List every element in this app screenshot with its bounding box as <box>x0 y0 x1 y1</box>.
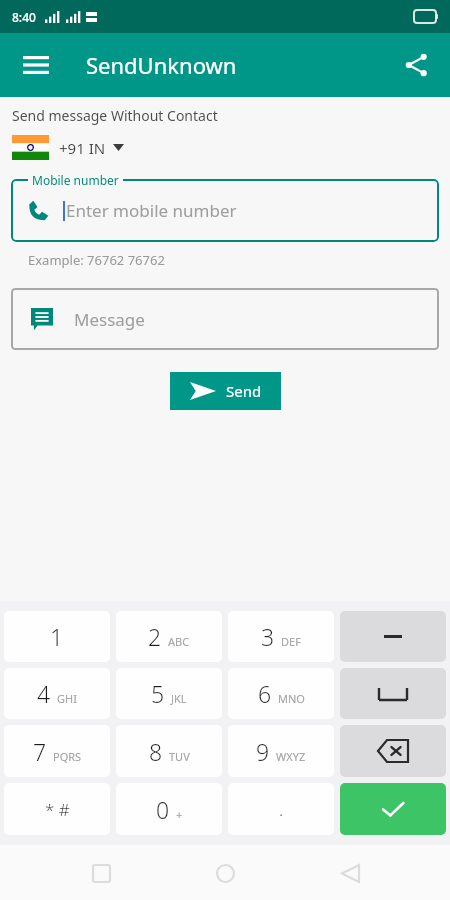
button[interactable]: 7 <box>4 725 110 777</box>
button[interactable]: Open navigation menu <box>14 43 58 87</box>
button[interactable]: +91 IN <box>12 135 124 160</box>
staticText: 0 <box>156 794 170 825</box>
staticText: 4 <box>37 678 51 709</box>
button[interactable]: Enter mobile number <box>11 179 439 242</box>
staticText: * # <box>45 798 70 821</box>
staticText: 8:40 <box>12 9 36 25</box>
staticText: 1 <box>50 621 64 652</box>
staticText: DEF <box>281 634 301 649</box>
staticText: +91 IN <box>59 138 106 158</box>
staticText: Mobile number <box>32 172 119 188</box>
button[interactable]: 2 <box>116 611 222 662</box>
button[interactable]: Send <box>170 372 281 410</box>
button[interactable]: 6 <box>228 668 334 719</box>
staticText: Send message Without Contact <box>12 106 218 125</box>
button[interactable]: Enter <box>340 783 446 835</box>
staticText: + <box>176 807 183 822</box>
staticText: Enter mobile number <box>66 199 237 222</box>
button[interactable]: Home <box>201 849 249 897</box>
button[interactable]: * # <box>4 783 110 835</box>
button[interactable]: 8 <box>116 725 222 777</box>
staticText: Send <box>226 381 262 401</box>
button[interactable]: 0 <box>116 783 222 835</box>
staticText: 8 <box>149 736 163 767</box>
staticText: Message <box>74 308 145 331</box>
button[interactable]: Space <box>340 668 446 719</box>
button[interactable]: Message <box>11 288 439 350</box>
staticText: TUV <box>169 749 190 764</box>
staticText: 2 <box>148 621 162 652</box>
button[interactable]: 3 <box>228 611 334 662</box>
staticText: 3 <box>261 621 275 652</box>
staticText: 7 <box>33 736 47 767</box>
staticText: GHI <box>57 691 77 706</box>
staticText: JKL <box>171 691 187 706</box>
button[interactable]: Back <box>326 849 374 897</box>
button[interactable]: 9 <box>228 725 334 777</box>
staticText: WXYZ <box>276 749 306 764</box>
staticText: MNO <box>278 691 305 706</box>
staticText: Example: 76762 76762 <box>28 251 165 269</box>
staticText: 6 <box>258 678 272 709</box>
button[interactable]: 4 <box>4 668 110 719</box>
staticText: SendUnknown <box>86 50 237 80</box>
staticText: . <box>279 798 284 821</box>
button[interactable]: 1 <box>4 611 110 662</box>
button[interactable]: Share <box>394 43 438 87</box>
button[interactable]: Dash <box>340 611 446 662</box>
button[interactable]: Backspace <box>340 725 446 777</box>
button[interactable]: 5 <box>116 668 222 719</box>
button[interactable]: Recent apps <box>77 849 125 897</box>
staticText: 5 <box>151 678 165 709</box>
staticText: PQRS <box>53 749 82 764</box>
staticText: ABC <box>168 634 190 649</box>
staticText: 9 <box>256 736 270 767</box>
